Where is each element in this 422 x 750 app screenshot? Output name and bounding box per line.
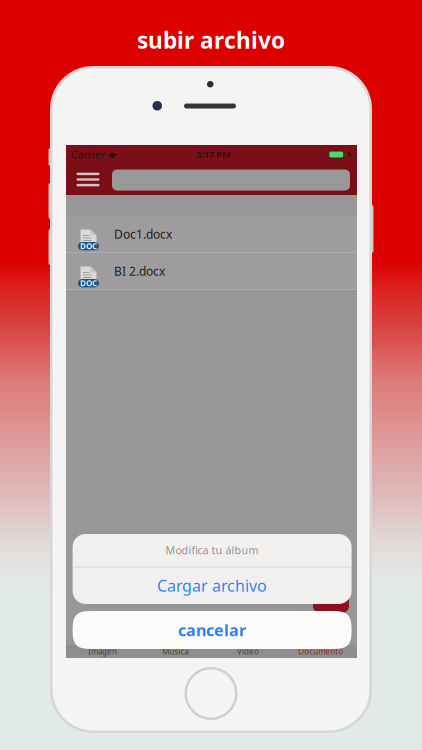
staticText: Musica	[162, 646, 188, 657]
staticText: Documento	[298, 646, 343, 657]
button[interactable]: DOC	[66, 216, 357, 252]
button[interactable]: Search	[112, 169, 350, 190]
button[interactable]: Imagen	[66, 645, 139, 658]
staticText: Modifica tu álbum	[166, 543, 259, 557]
button[interactable]: Cargar archivo	[73, 567, 352, 604]
button[interactable]: Musica	[139, 645, 212, 658]
staticText: DOC	[80, 278, 97, 288]
button[interactable]: cancelar	[73, 611, 352, 649]
staticText: BI 2.docx	[114, 263, 165, 279]
staticText: subir archivo	[137, 25, 285, 55]
staticText: Cargar archivo	[157, 575, 267, 596]
staticText: 3:17 PM	[196, 148, 231, 161]
staticText: Imagen	[88, 646, 117, 657]
staticText: Doc1.docx	[114, 226, 172, 242]
button[interactable]: DOC	[66, 253, 357, 289]
staticText: Video	[237, 646, 259, 657]
button[interactable]: Documento	[284, 645, 357, 658]
staticText: cancelar	[178, 619, 246, 641]
staticText: DOC	[80, 241, 97, 251]
staticText: Carrier	[71, 147, 105, 162]
button[interactable]: Menu	[66, 164, 110, 195]
button[interactable]: Video	[211, 645, 284, 658]
